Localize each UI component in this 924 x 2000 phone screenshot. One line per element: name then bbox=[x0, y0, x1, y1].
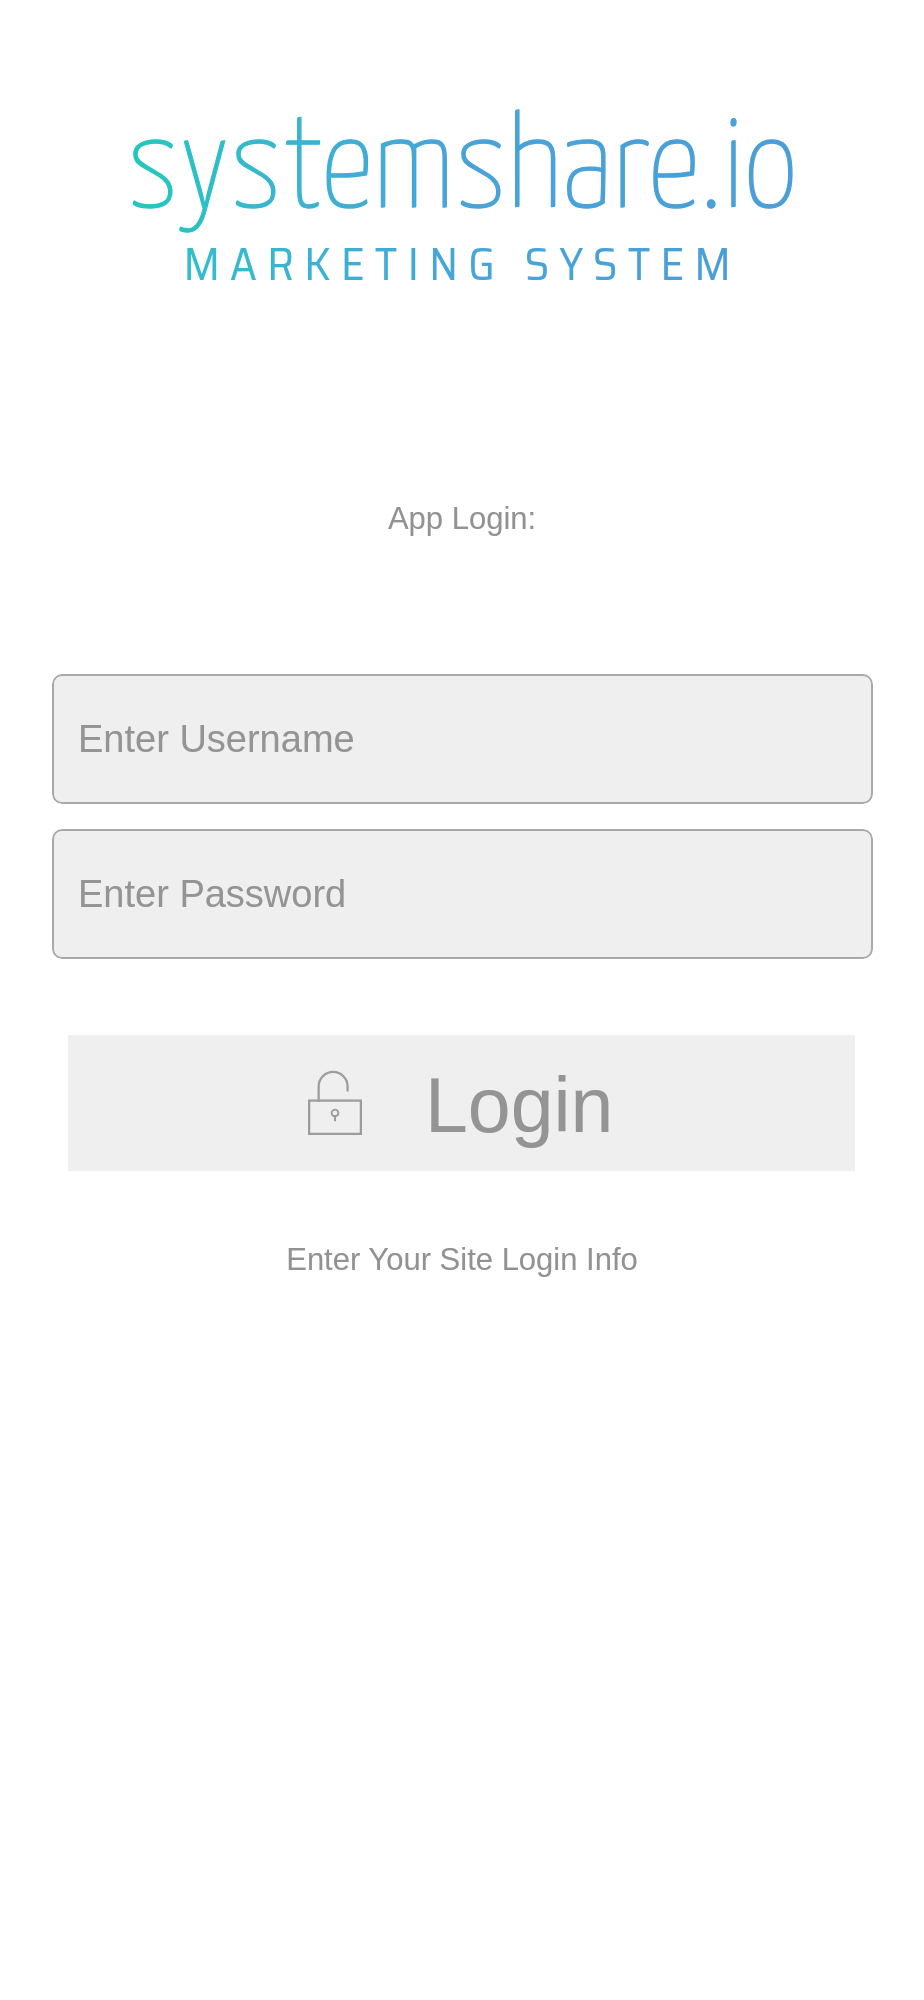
staticText: App Login: bbox=[0, 501, 924, 536]
staticText: MARKETING SYSTEM bbox=[0, 228, 924, 300]
staticText: systemshare.io bbox=[0, 110, 924, 233]
staticText: systemshare.io bbox=[0, 110, 924, 233]
staticText: Login bbox=[425, 1062, 614, 1148]
staticText: Enter Username bbox=[78, 718, 355, 760]
staticText: Enter Password bbox=[78, 873, 347, 915]
button[interactable]: Enter Password bbox=[52, 829, 873, 959]
button[interactable]: Unlock bbox=[68, 1035, 855, 1171]
other: Unlock bbox=[308, 1071, 362, 1135]
button[interactable]: Enter Username bbox=[52, 674, 873, 804]
staticText: Enter Your Site Login Info bbox=[0, 1242, 924, 1277]
